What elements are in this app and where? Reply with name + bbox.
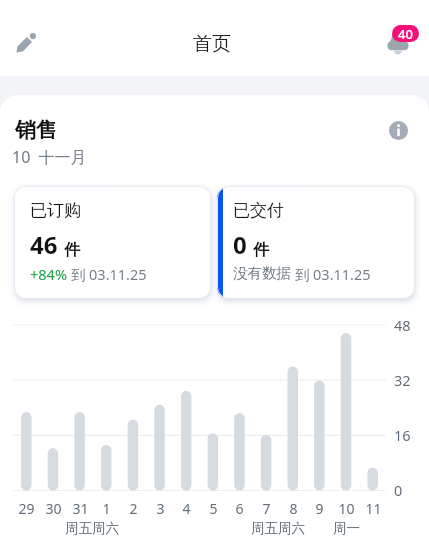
staticText: 10 <box>338 499 355 518</box>
staticText: 46 <box>30 228 58 261</box>
staticText: 首页 <box>193 32 231 56</box>
staticText: 16 <box>394 425 411 445</box>
staticText: 0 <box>233 228 247 261</box>
staticText: 5 <box>209 499 218 518</box>
staticText: 到 03.11.25 <box>291 264 371 284</box>
button[interactable]: 已订购 <box>14 186 211 299</box>
staticText: 11 <box>365 499 382 518</box>
button[interactable]: Info <box>386 118 411 143</box>
staticText: 2 <box>129 499 138 518</box>
staticText: 周五周六 <box>65 520 119 537</box>
staticText: 9 <box>315 499 324 518</box>
staticText: 40 <box>398 25 413 42</box>
staticText: 件 <box>64 240 80 260</box>
staticText: 销售 <box>15 117 57 143</box>
staticText: 已交付 <box>233 200 284 221</box>
button[interactable]: Notifications <box>375 16 419 60</box>
staticText: 10 十一月 <box>12 146 87 168</box>
staticText: 0 <box>394 480 403 500</box>
staticText: 没有数据 <box>233 264 291 282</box>
staticText: 周五周六 <box>251 520 305 537</box>
staticText: 3 <box>156 499 165 518</box>
staticText: 到 03.11.25 <box>67 264 147 284</box>
staticText: 1 <box>102 499 111 518</box>
staticText: 29 <box>18 499 35 518</box>
button[interactable]: 已交付 <box>217 186 415 299</box>
staticText: 30 <box>45 499 62 518</box>
staticText: 4 <box>182 499 191 518</box>
staticText: 7 <box>262 499 271 518</box>
staticText: +84% <box>30 264 67 284</box>
staticText: 8 <box>289 499 298 518</box>
staticText: 32 <box>394 370 411 390</box>
staticText: 件 <box>253 240 269 260</box>
button[interactable]: Edit <box>4 21 48 65</box>
staticText: 48 <box>394 315 411 335</box>
staticText: 已订购 <box>30 200 81 221</box>
staticText: 周一 <box>333 520 360 537</box>
staticText: 31 <box>72 499 89 518</box>
staticText: 6 <box>235 499 244 518</box>
